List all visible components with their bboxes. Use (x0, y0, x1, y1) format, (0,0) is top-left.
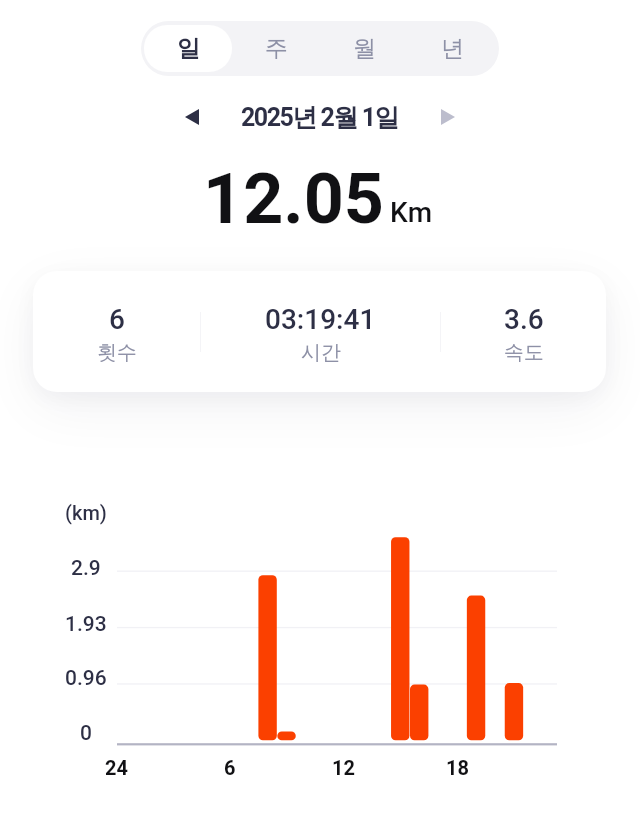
staticText: 12.05 (203, 158, 385, 240)
staticText: 횟수 (97, 340, 137, 365)
staticText: 1.93 (65, 612, 107, 637)
staticText: 24 (105, 756, 128, 779)
staticText: 18 (446, 756, 469, 779)
button[interactable]: 3.6 (441, 271, 606, 392)
staticText: 0 (80, 721, 92, 746)
staticText: 시간 (301, 340, 341, 365)
staticText: 6 (224, 756, 236, 779)
staticText: 주 (265, 34, 288, 63)
staticText: Km (390, 196, 433, 229)
button[interactable]: Next day (425, 95, 471, 139)
button[interactable]: 일 (144, 25, 232, 72)
button[interactable]: 03:19:41 (201, 271, 440, 392)
staticText: 12 (332, 756, 355, 779)
staticText: 년 (441, 34, 464, 63)
staticText: 월 (353, 34, 376, 63)
button[interactable]: 6 (33, 271, 200, 392)
staticText: 0.96 (65, 666, 107, 691)
staticText: 일 (177, 34, 200, 63)
staticText: 속도 (504, 340, 544, 365)
button[interactable]: 월 (320, 25, 408, 72)
button[interactable]: 주 (232, 25, 320, 72)
staticText: 03:19:41 (265, 303, 376, 336)
button[interactable]: 년 (408, 25, 496, 72)
button[interactable]: Previous day (169, 95, 215, 139)
staticText: 2025년 2월 1일 (241, 102, 399, 133)
staticText: 3.6 (504, 303, 544, 336)
staticText: 2.9 (71, 556, 101, 581)
staticText: (km) (65, 501, 107, 524)
staticText: 6 (109, 303, 125, 336)
